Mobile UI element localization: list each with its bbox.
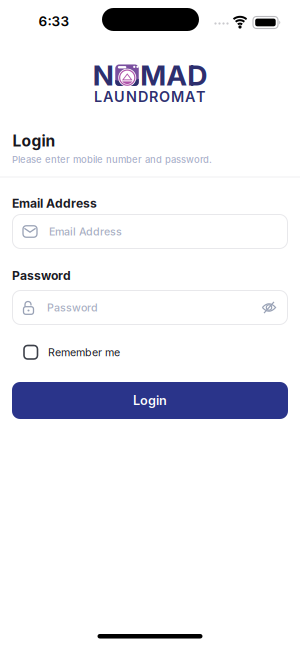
button[interactable]: Remember me [24, 345, 120, 359]
button[interactable]: Login [12, 382, 288, 419]
staticText: 6:33 [38, 13, 69, 30]
staticText: Login [12, 131, 55, 150]
staticText: Password [12, 268, 71, 283]
staticText: Please enter mobile number and password. [12, 154, 212, 165]
staticText: Remember me [48, 346, 120, 359]
button[interactable]: Email Address [12, 214, 288, 249]
staticText: Login [133, 393, 167, 408]
button[interactable]: Password [12, 290, 288, 325]
button[interactable] [261, 299, 277, 315]
staticText: Password [47, 301, 98, 314]
staticText: Email Address [12, 196, 97, 211]
staticText: Email Address [49, 225, 122, 238]
staticText: L A U N D R O M A T [94, 88, 206, 105]
staticText: MAD [140, 58, 207, 92]
staticText: N [93, 58, 114, 92]
